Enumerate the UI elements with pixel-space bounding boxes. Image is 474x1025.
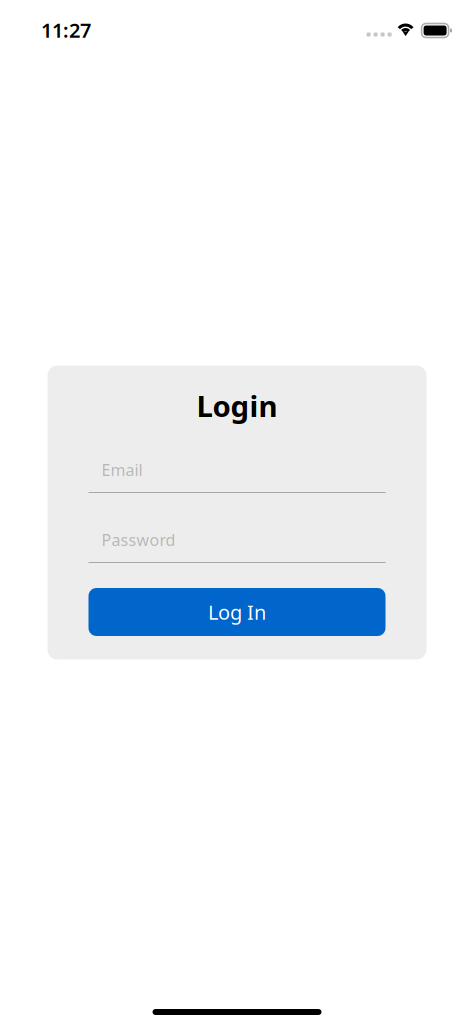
button[interactable]: Log In	[88, 588, 385, 636]
button[interactable]: Password	[88, 521, 385, 563]
staticText: Password	[101, 529, 175, 550]
staticText: Email	[101, 459, 142, 480]
staticText: 11:27	[41, 17, 91, 43]
staticText: Log In	[208, 599, 266, 625]
button[interactable]: Email	[88, 451, 385, 493]
staticText: Login	[196, 386, 277, 425]
